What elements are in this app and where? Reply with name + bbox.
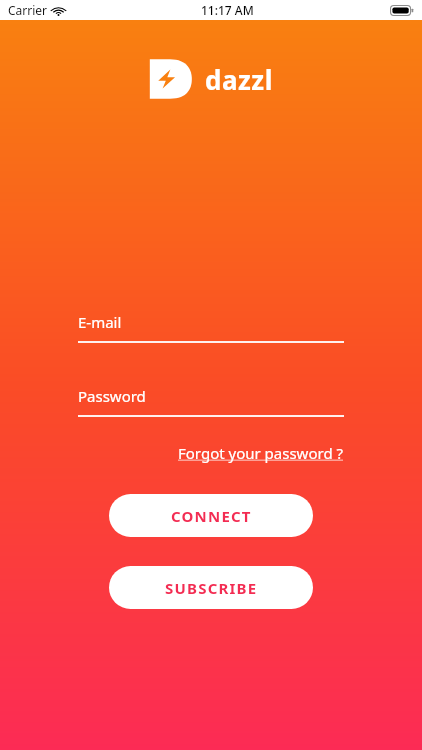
staticText: dazzl [205,62,273,97]
staticText: Carrier [8,2,48,18]
staticText: CONNECT [171,506,252,526]
other: dazzl logo [149,58,191,100]
staticText: 11:17 AM [201,2,254,18]
staticText: E-mail [78,312,122,332]
staticText: Forgot your password ? [178,443,344,463]
button[interactable]: E-mail [78,312,344,343]
staticText: Password [78,386,146,406]
staticText: SUBSCRIBE [165,578,258,598]
button[interactable]: CONNECT [109,494,313,537]
button[interactable]: Forgot your password ? [178,439,344,467]
button[interactable]: SUBSCRIBE [109,566,313,609]
button[interactable]: Password [78,386,344,417]
